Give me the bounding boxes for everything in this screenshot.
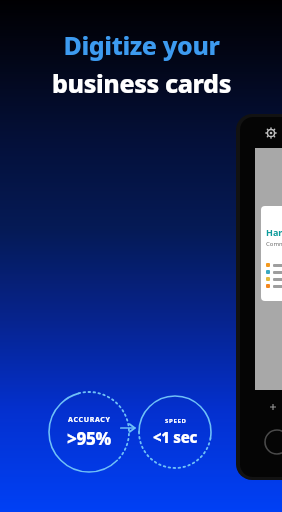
staticText: business cards — [52, 66, 231, 100]
staticText: Harr — [266, 226, 282, 238]
staticText: <1 sec — [153, 427, 198, 447]
staticText: ACCURACY — [68, 415, 111, 425]
button[interactable]: Settings — [264, 126, 278, 140]
button[interactable]: ACCURACY — [47, 390, 131, 474]
staticText: >95% — [67, 427, 111, 450]
button[interactable]: Harr — [261, 206, 282, 301]
staticText: SPEED — [165, 417, 187, 425]
button[interactable]: SPEED — [137, 394, 213, 470]
staticText: Digitize your — [63, 28, 220, 62]
other: Shutter — [264, 429, 282, 455]
staticText: Comm — [266, 240, 282, 248]
